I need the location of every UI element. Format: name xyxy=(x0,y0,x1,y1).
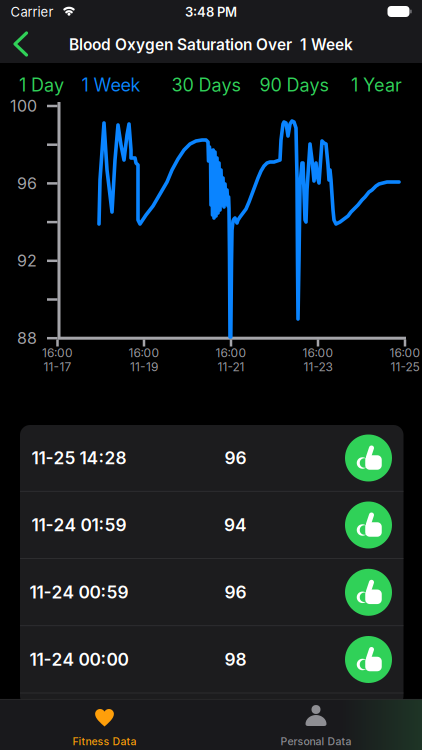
button[interactable]: 1 Year xyxy=(351,74,402,96)
staticText: 11-25 14:28 xyxy=(31,447,126,468)
button[interactable]: Like xyxy=(345,434,392,481)
staticText: 1 Week xyxy=(81,74,140,96)
staticText: 1 Day xyxy=(19,74,64,96)
button[interactable]: 1 Day xyxy=(19,74,64,96)
staticText: 11-24 01:59 xyxy=(31,514,126,535)
staticText: 30 Days xyxy=(171,74,241,96)
staticText: 94 xyxy=(224,514,247,535)
staticText: 11-19 xyxy=(130,360,158,374)
staticText: 16:00 xyxy=(215,346,246,360)
button[interactable]: Back xyxy=(5,29,35,59)
staticText: 96 xyxy=(224,582,246,603)
staticText: 92 xyxy=(17,251,37,270)
staticText: 96 xyxy=(17,174,37,193)
staticText: 98 xyxy=(224,649,246,670)
button[interactable]: Fitness Data xyxy=(34,700,174,750)
button[interactable]: Like xyxy=(345,636,392,683)
button[interactable]: 90 Days xyxy=(259,74,329,96)
staticText: 16:00 xyxy=(389,346,420,360)
staticText: 100 xyxy=(10,96,37,116)
button[interactable]: Like xyxy=(345,569,392,616)
button[interactable]: 11-24 00:59 xyxy=(20,559,403,626)
button[interactable]: 30 Days xyxy=(171,74,241,96)
staticText: 16:00 xyxy=(128,346,159,360)
staticText: 90 Days xyxy=(259,74,329,96)
staticText: 11-24 00:59 xyxy=(29,582,128,603)
staticText: 11-24 00:00 xyxy=(29,649,128,670)
button[interactable]: 11-24 00:00 xyxy=(20,626,403,693)
button[interactable]: Like xyxy=(345,501,392,548)
button[interactable]: 1 Week xyxy=(81,74,140,96)
staticText: 11-17 xyxy=(43,360,71,374)
staticText: 3:48 PM xyxy=(185,4,237,20)
staticText: 96 xyxy=(224,447,246,468)
staticText: Fitness Data xyxy=(72,735,136,748)
staticText: 11-23 xyxy=(303,360,332,374)
button[interactable]: 11-25 14:28 xyxy=(20,424,403,492)
staticText: 11-21 xyxy=(217,360,244,374)
button[interactable]: Personal Data xyxy=(246,700,386,750)
staticText: 1 Year xyxy=(351,74,402,96)
staticText: 11-25 xyxy=(390,360,419,374)
staticText: Personal Data xyxy=(280,735,351,748)
staticText: Carrier xyxy=(10,4,53,20)
staticText: 88 xyxy=(17,328,37,348)
button[interactable]: 11-24 01:59 xyxy=(20,491,403,559)
staticText: Blood Oxygen Saturation Over 1 Week xyxy=(69,35,353,54)
staticText: 16:00 xyxy=(302,346,333,360)
staticText: 16:00 xyxy=(42,346,73,360)
